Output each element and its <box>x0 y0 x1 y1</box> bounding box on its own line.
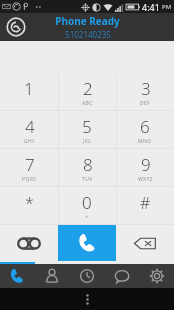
button[interactable]: * <box>0 187 58 224</box>
button[interactable]: Contacts <box>34 264 69 288</box>
button[interactable]: Call <box>58 225 116 261</box>
staticText: ABC <box>82 100 93 107</box>
button[interactable]: Backspace <box>116 225 174 261</box>
staticText: 4 <box>25 115 35 138</box>
staticText: 8 <box>83 153 93 176</box>
staticText: JKL <box>83 138 92 145</box>
staticText: Phone Ready <box>55 14 120 28</box>
button[interactable]: Settings <box>139 264 174 288</box>
button[interactable]: 5 <box>58 111 116 148</box>
button[interactable]: More options <box>80 292 94 306</box>
button[interactable]: Dialer <box>0 264 34 288</box>
staticText: MNO <box>138 138 152 145</box>
button[interactable]: 7 <box>0 149 58 186</box>
button[interactable]: App logo <box>6 17 26 37</box>
staticText: DEF <box>140 100 151 107</box>
button[interactable]: 1 <box>0 73 58 110</box>
staticText: * <box>25 192 34 214</box>
button[interactable]: 4 <box>0 111 58 148</box>
staticText: WXYZ <box>138 176 153 183</box>
staticText: 0 <box>82 191 92 214</box>
staticText: TUV <box>82 176 93 183</box>
staticText: 9 <box>141 153 151 176</box>
button[interactable]: Voicemail <box>0 225 58 261</box>
staticText: 5 <box>82 115 92 138</box>
button[interactable]: Recents <box>69 264 104 288</box>
staticText: # <box>140 192 151 214</box>
button[interactable]: 2 <box>58 73 116 110</box>
button[interactable]: 6 <box>116 111 174 148</box>
button[interactable]: 9 <box>116 149 174 186</box>
button[interactable]: 8 <box>58 149 116 186</box>
button[interactable]: Messages <box>104 264 139 288</box>
staticText: 1 <box>24 77 34 100</box>
staticText: + <box>85 214 89 221</box>
button[interactable]: 0 <box>58 187 116 224</box>
staticText: 7 <box>25 153 35 176</box>
staticText: GHI <box>24 138 35 145</box>
staticText: 3 <box>141 77 151 100</box>
staticText: 2 <box>83 77 93 100</box>
staticText: 6 <box>140 115 150 138</box>
staticText: 4:41 <box>142 1 160 13</box>
staticText: 5102140235 <box>65 29 111 40</box>
button[interactable]: # <box>116 187 174 224</box>
staticText: PM <box>162 3 172 11</box>
staticText: PQRS <box>22 176 37 183</box>
button[interactable]: 3 <box>116 73 174 110</box>
